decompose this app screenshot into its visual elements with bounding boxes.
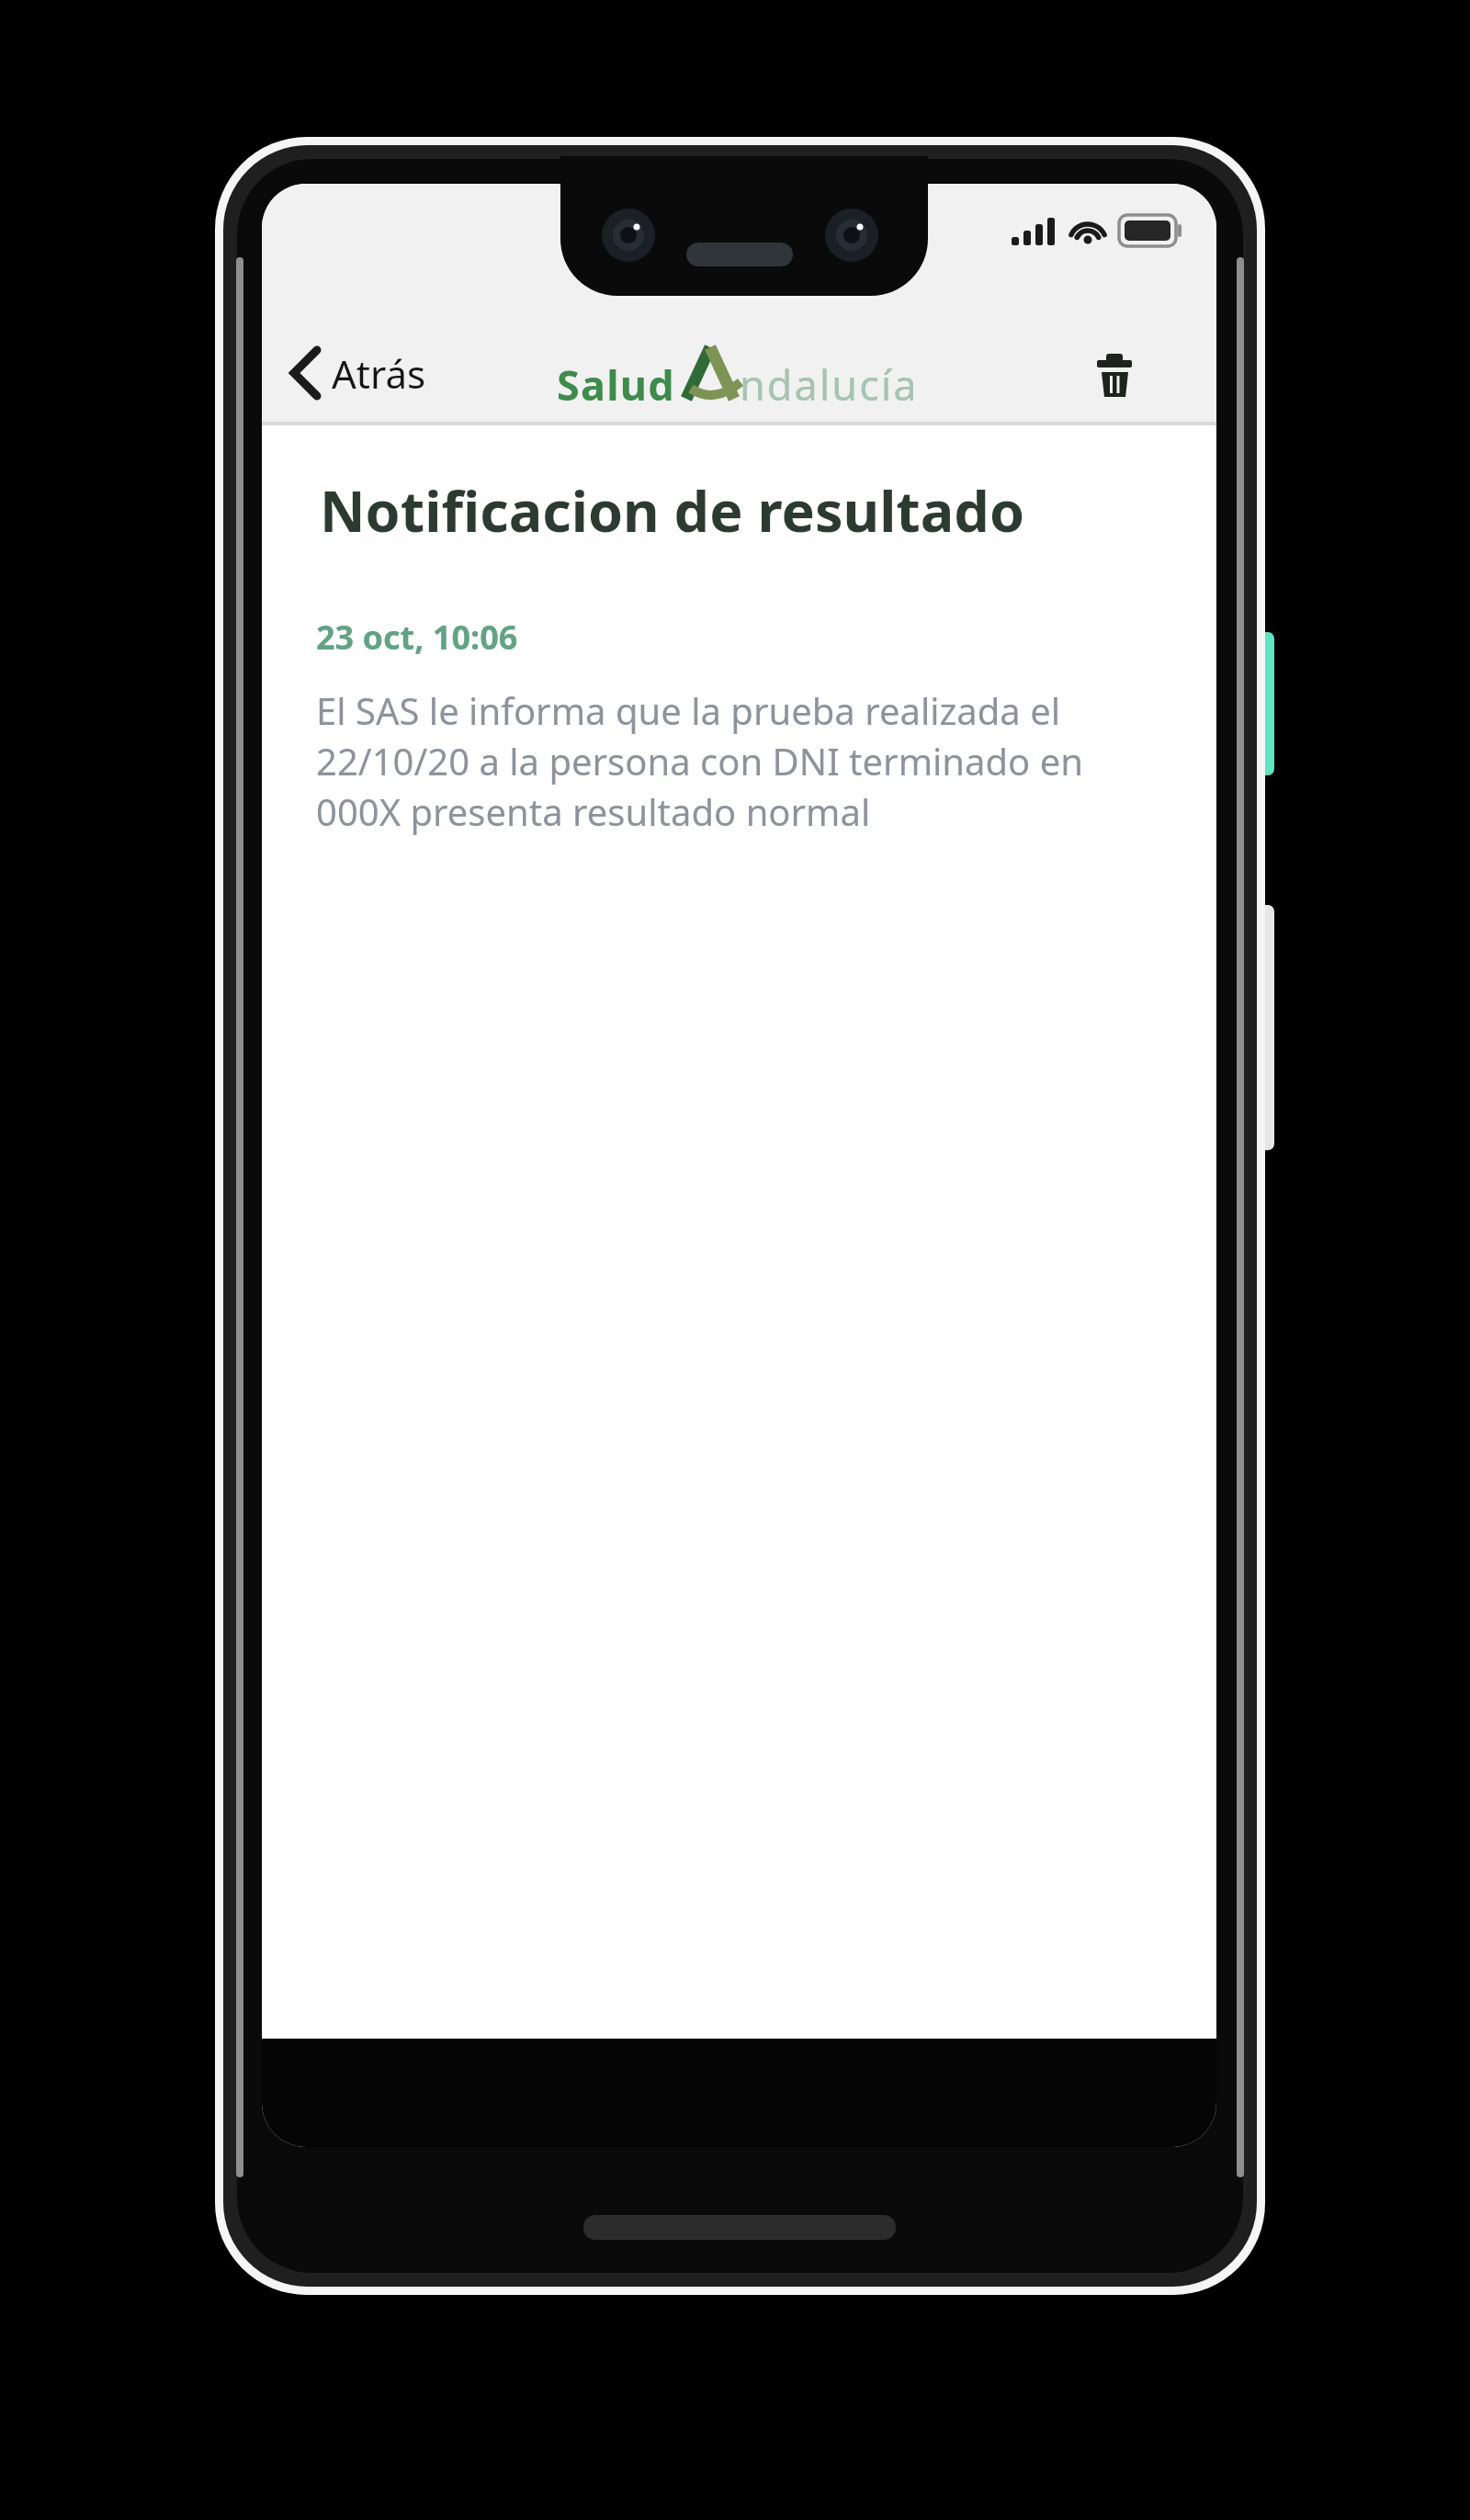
button[interactable]	[1073, 332, 1147, 414]
staticText: Notificacion de resultado	[320, 472, 1025, 548]
button[interactable]: Salud	[557, 340, 924, 413]
staticText: Atrás	[332, 347, 426, 400]
staticText: El SAS le informa que la prueba realizad…	[316, 685, 1083, 837]
staticText: 23 oct, 10:06	[316, 615, 518, 660]
staticText: Salud	[557, 356, 675, 412]
button[interactable]: Atrás	[280, 331, 446, 413]
staticText: ndalucía	[740, 356, 919, 412]
